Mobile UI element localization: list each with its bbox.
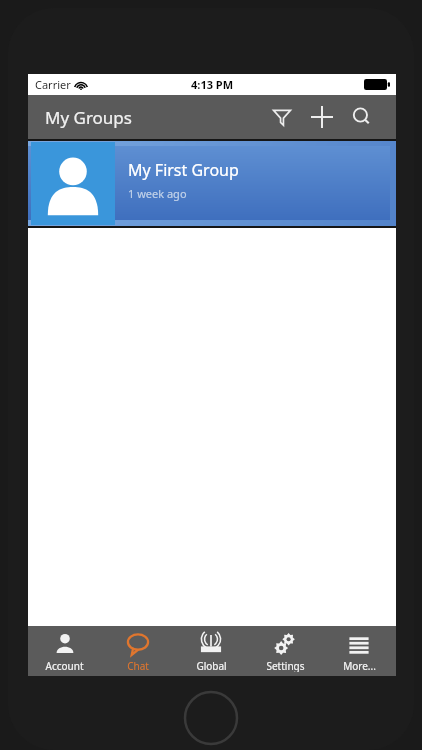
button[interactable]: More... bbox=[322, 626, 396, 676]
staticText: Carrier bbox=[35, 77, 71, 92]
button[interactable]: Account bbox=[28, 626, 101, 676]
staticText: My First Group bbox=[128, 159, 239, 181]
button[interactable]: Search bbox=[342, 97, 382, 137]
staticText: Chat bbox=[127, 659, 149, 672]
staticText: More... bbox=[343, 659, 376, 672]
button[interactable]: Filter bbox=[262, 97, 302, 137]
button[interactable]: Chat bbox=[101, 626, 174, 676]
button[interactable]: Global bbox=[174, 626, 248, 676]
other: Home bbox=[183, 690, 239, 746]
staticText: Settings bbox=[266, 659, 305, 672]
staticText: 1 week ago bbox=[128, 186, 187, 201]
button[interactable]: My First Group bbox=[28, 139, 396, 228]
staticText: Global bbox=[196, 659, 227, 672]
button[interactable]: Add group bbox=[302, 97, 342, 137]
staticText: 4:13 PM bbox=[191, 77, 234, 92]
staticText: My Groups bbox=[45, 106, 132, 129]
button[interactable]: Settings bbox=[248, 626, 322, 676]
staticText: Account bbox=[45, 659, 84, 672]
